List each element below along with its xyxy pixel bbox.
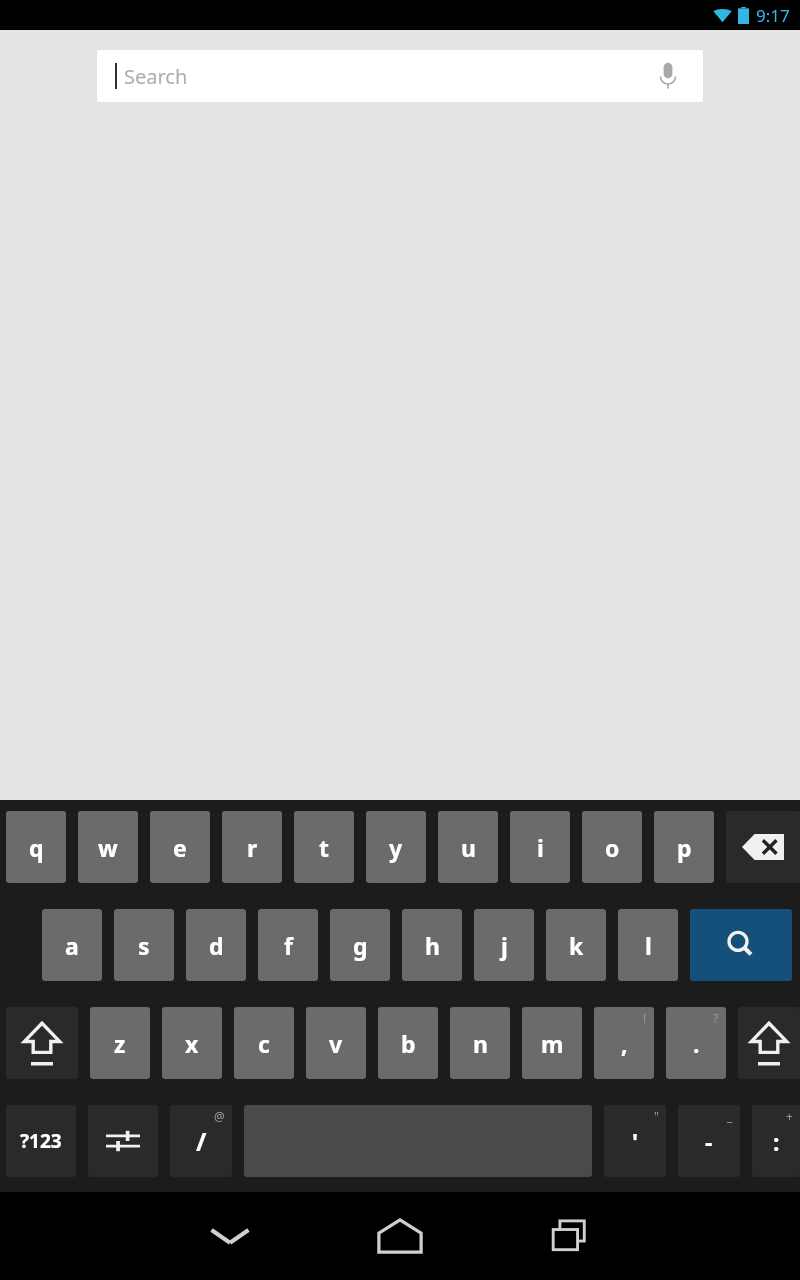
staticText: x	[185, 1028, 199, 1059]
staticText: j	[501, 930, 508, 961]
staticText: t	[319, 832, 329, 863]
button[interactable]: r	[222, 811, 282, 883]
staticText: v	[329, 1028, 343, 1059]
button[interactable]: o	[582, 811, 642, 883]
staticText: p	[677, 832, 692, 863]
button[interactable]: c	[234, 1007, 294, 1079]
button[interactable]: h	[402, 909, 462, 981]
staticText: m	[541, 1028, 564, 1059]
staticText: !	[643, 1010, 647, 1026]
button[interactable]: '	[604, 1105, 666, 1177]
staticText: ?123	[20, 1128, 62, 1154]
button[interactable]: .	[666, 1007, 726, 1079]
staticText: q	[29, 832, 44, 863]
staticText: ,	[621, 1028, 628, 1059]
staticText: k	[569, 930, 584, 961]
button[interactable]: p	[654, 811, 714, 883]
staticText: +	[786, 1108, 793, 1124]
button[interactable]: e	[150, 811, 210, 883]
button[interactable]: v	[306, 1007, 366, 1079]
button[interactable]: Search	[97, 50, 703, 102]
button[interactable]: -	[678, 1105, 740, 1177]
button[interactable]: Search	[690, 909, 792, 981]
staticText: Search	[124, 63, 651, 90]
button[interactable]: d	[186, 909, 246, 981]
staticText: z	[114, 1028, 126, 1059]
staticText: s	[138, 930, 150, 961]
staticText: y	[389, 832, 403, 863]
staticText: 9:17	[756, 4, 790, 27]
staticText: g	[353, 930, 368, 961]
button[interactable]: x	[162, 1007, 222, 1079]
button[interactable]: s	[114, 909, 174, 981]
button[interactable]: Backspace	[726, 811, 800, 883]
button[interactable]: n	[450, 1007, 510, 1079]
button[interactable]: l	[618, 909, 678, 981]
staticText: i	[537, 832, 544, 863]
button[interactable]: Hide keyboard	[174, 1206, 286, 1266]
staticText: _	[727, 1108, 733, 1124]
button[interactable]: a	[42, 909, 102, 981]
staticText: o	[605, 832, 620, 863]
button[interactable]: i	[510, 811, 570, 883]
staticText: '	[632, 1126, 639, 1157]
button[interactable]: Home	[344, 1206, 456, 1266]
button[interactable]: Voice search	[651, 59, 685, 93]
staticText: /	[196, 1124, 207, 1158]
button[interactable]: Shift	[738, 1007, 800, 1079]
staticText: f	[284, 930, 293, 961]
staticText: @	[214, 1108, 225, 1124]
button[interactable]: u	[438, 811, 498, 883]
staticText: a	[65, 930, 79, 961]
button[interactable]: m	[522, 1007, 582, 1079]
button[interactable]: y	[366, 811, 426, 883]
staticText: "	[654, 1108, 659, 1124]
button[interactable]: /	[170, 1105, 232, 1177]
button[interactable]: t	[294, 811, 354, 883]
staticText: w	[98, 832, 118, 863]
button[interactable]: Shift	[6, 1007, 78, 1079]
staticText: n	[473, 1028, 488, 1059]
button[interactable]: z	[90, 1007, 150, 1079]
staticText: d	[209, 930, 224, 961]
button[interactable]: :	[752, 1105, 800, 1177]
button[interactable]: k	[546, 909, 606, 981]
button[interactable]: Recent apps	[514, 1206, 626, 1266]
button[interactable]: Input settings	[88, 1105, 158, 1177]
staticText: l	[645, 930, 652, 961]
staticText: c	[258, 1028, 270, 1059]
staticText: :	[773, 1126, 780, 1157]
button[interactable]: ?123	[6, 1105, 76, 1177]
button[interactable]: b	[378, 1007, 438, 1079]
staticText: .	[693, 1028, 700, 1059]
button[interactable]: f	[258, 909, 318, 981]
staticText: h	[425, 930, 440, 961]
button[interactable]: j	[474, 909, 534, 981]
button[interactable]: ,	[594, 1007, 654, 1079]
staticText: ?	[713, 1010, 719, 1026]
staticText: e	[173, 832, 187, 863]
button[interactable]: q	[6, 811, 66, 883]
staticText: b	[401, 1028, 416, 1059]
button[interactable]: g	[330, 909, 390, 981]
staticText: -	[705, 1126, 713, 1157]
button[interactable]: w	[78, 811, 138, 883]
staticText: r	[247, 832, 258, 863]
staticText: u	[461, 832, 476, 863]
